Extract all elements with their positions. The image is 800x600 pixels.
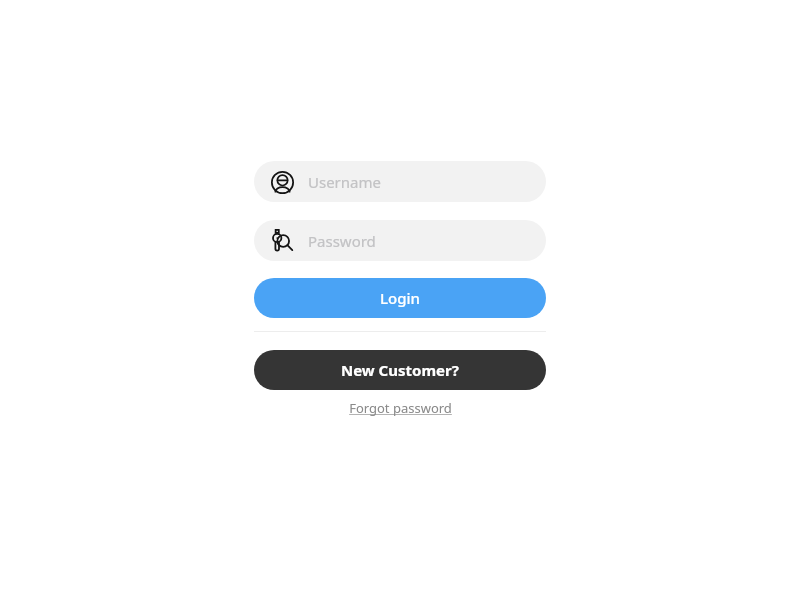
staticText: Forgot password	[349, 399, 452, 417]
staticText: Username	[308, 172, 381, 192]
staticText: Login	[380, 288, 420, 308]
other: Password	[270, 229, 294, 253]
button[interactable]: New Customer?	[254, 350, 546, 390]
staticText: New Customer?	[341, 360, 459, 380]
button[interactable]: Login	[254, 278, 546, 318]
staticText: Password	[308, 231, 376, 251]
button[interactable]: Forgot password	[345, 397, 456, 419]
other: Username	[271, 171, 294, 194]
button[interactable]: Password	[254, 220, 546, 261]
button[interactable]: Username	[254, 161, 546, 202]
